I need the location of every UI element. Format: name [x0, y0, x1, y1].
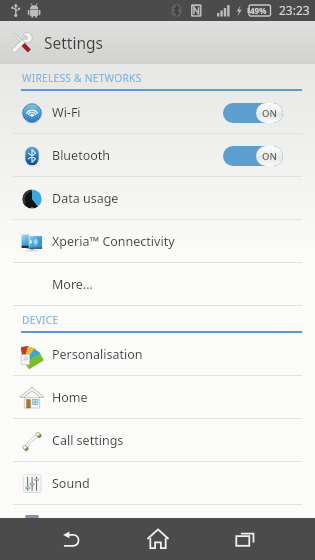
staticText: 49% [250, 5, 267, 16]
staticText: Wi-Fi [52, 104, 81, 121]
staticText: Home [52, 389, 88, 406]
staticText: Xperia™ Connectivity [52, 233, 175, 250]
button[interactable]: Sound [0, 462, 315, 505]
button[interactable]: Recent apps [231, 525, 259, 553]
button[interactable]: More... [0, 263, 315, 306]
staticText: Personalisation [52, 346, 143, 363]
staticText: Sound [52, 475, 90, 492]
button[interactable]: ON [223, 146, 283, 166]
staticText: ON [262, 150, 277, 163]
button[interactable]: Bluetooth [0, 134, 315, 177]
button[interactable]: ON [223, 103, 283, 123]
staticText: WIRELESS & NETWORKS [22, 71, 142, 85]
button[interactable]: Settings [0, 21, 315, 64]
button[interactable]: Wi-Fi [0, 91, 315, 134]
staticText: More... [52, 276, 93, 293]
button[interactable]: Back [57, 525, 85, 553]
button[interactable]: Data usage [0, 177, 315, 220]
staticText: DEVICE [22, 313, 59, 327]
staticText: 23:23 [279, 2, 310, 18]
button[interactable]: Home [0, 376, 315, 419]
staticText: ON [262, 107, 277, 120]
button[interactable]: Personalisation [0, 333, 315, 376]
button[interactable]: Call settings [0, 419, 315, 462]
staticText: Settings [44, 32, 103, 53]
staticText: Data usage [52, 190, 119, 207]
staticText: Bluetooth [52, 147, 111, 164]
button[interactable]: Xperia™ Connectivity [0, 220, 315, 263]
button[interactable]: Home [144, 525, 172, 553]
staticText: Call settings [52, 432, 124, 449]
